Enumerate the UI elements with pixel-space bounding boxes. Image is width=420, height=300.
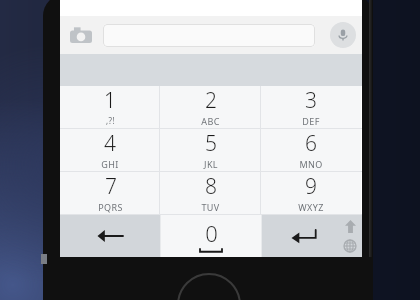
- staticText: PQRS: [98, 201, 123, 213]
- button[interactable]: 4: [60, 129, 160, 171]
- button[interactable]: Return: [262, 215, 362, 257]
- button[interactable]: Backspace: [60, 215, 160, 257]
- staticText: 4: [104, 129, 116, 158]
- button[interactable]: 0: [161, 215, 261, 257]
- staticText: 3: [305, 86, 317, 115]
- staticText: JKL: [204, 158, 218, 170]
- button[interactable]: 9: [261, 172, 361, 214]
- staticText: 9: [305, 172, 317, 201]
- button[interactable]: 2: [160, 86, 261, 128]
- staticText: MNO: [299, 158, 323, 170]
- staticText: 7: [105, 172, 117, 201]
- staticText: ABC: [201, 115, 220, 127]
- button[interactable]: 5: [160, 129, 261, 171]
- button[interactable]: Shift: [342, 218, 358, 234]
- button[interactable]: 1: [60, 86, 160, 128]
- button[interactable]: 7: [60, 172, 160, 214]
- button[interactable]: Voice input: [330, 22, 356, 48]
- button[interactable]: Camera: [68, 22, 94, 48]
- staticText: WXYZ: [298, 201, 324, 213]
- staticText: 2: [205, 86, 217, 115]
- staticText: 0: [205, 218, 218, 248]
- button[interactable]: 3: [261, 86, 361, 128]
- staticText: 8: [205, 172, 217, 201]
- staticText: GHI: [101, 158, 119, 170]
- staticText: 5: [205, 129, 217, 158]
- staticText: 1: [104, 86, 116, 115]
- button[interactable]: 6: [261, 129, 361, 171]
- staticText: 6: [305, 129, 317, 158]
- button[interactable]: Change keyboard: [342, 238, 358, 254]
- staticText: TUV: [201, 201, 220, 213]
- staticText: ,?!: [106, 115, 115, 126]
- button[interactable]: 8: [160, 172, 261, 214]
- button[interactable]: [103, 24, 315, 47]
- staticText: DEF: [302, 115, 320, 127]
